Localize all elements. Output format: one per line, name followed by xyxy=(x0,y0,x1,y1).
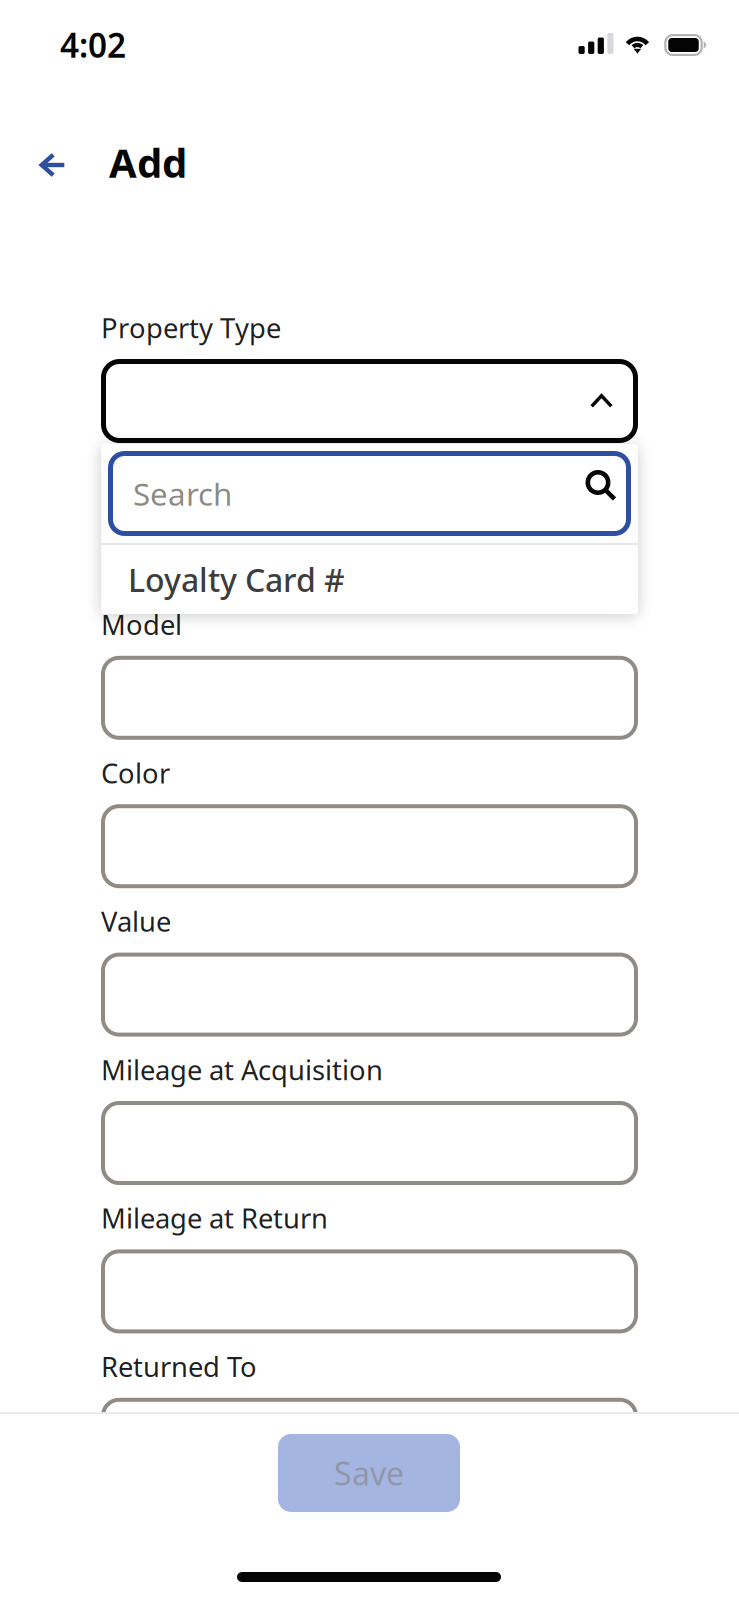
button[interactable] xyxy=(101,1249,638,1333)
staticText: Color xyxy=(101,754,170,791)
staticText: Value xyxy=(101,903,171,940)
staticText: Returned To xyxy=(101,1348,257,1385)
staticText: Loyalty Card # xyxy=(128,558,345,601)
button[interactable] xyxy=(101,1101,638,1185)
staticText: 4:02 xyxy=(60,22,126,67)
button[interactable]: Property Type xyxy=(101,359,638,443)
staticText: Mileage at Return xyxy=(101,1199,328,1237)
button[interactable] xyxy=(101,1398,638,1482)
button[interactable] xyxy=(101,507,638,591)
staticText: Make xyxy=(101,457,171,495)
staticText: Add xyxy=(109,135,187,189)
button[interactable] xyxy=(101,953,638,1037)
staticText: Mileage at Acquisition xyxy=(101,1051,383,1088)
staticText: Model xyxy=(101,606,182,643)
button[interactable]: Save xyxy=(278,1434,460,1512)
staticText: Search xyxy=(133,472,232,515)
button[interactable]: Search xyxy=(108,451,631,536)
button[interactable] xyxy=(101,656,638,740)
button[interactable]: Loyalty Card # xyxy=(101,545,638,614)
staticText: Property Type xyxy=(101,309,281,346)
button[interactable] xyxy=(101,804,638,888)
staticText: Save xyxy=(334,1451,404,1495)
button[interactable]: Back xyxy=(27,141,79,189)
